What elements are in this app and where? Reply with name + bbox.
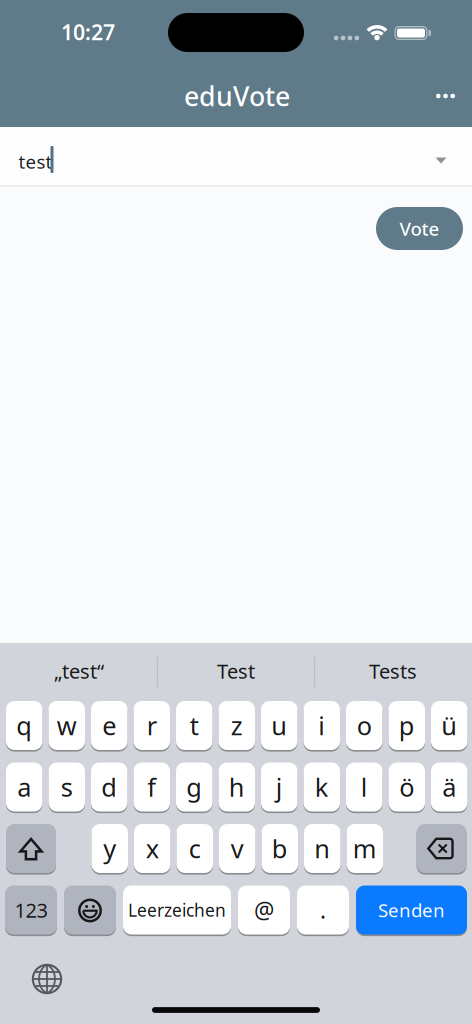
- button[interactable]: i: [303, 701, 340, 750]
- button[interactable]: m: [346, 824, 383, 873]
- staticText: l: [361, 770, 368, 804]
- staticText: Leerzeichen: [128, 898, 226, 921]
- staticText: j: [276, 770, 283, 804]
- button[interactable]: test: [0, 127, 472, 185]
- staticText: k: [315, 770, 329, 804]
- staticText: i: [318, 709, 325, 742]
- button[interactable]: Vote: [376, 207, 463, 250]
- staticText: w: [57, 709, 77, 742]
- button[interactable]: .: [297, 885, 349, 934]
- button[interactable]: Emoji: [64, 885, 116, 934]
- button[interactable]: c: [176, 824, 213, 873]
- button[interactable]: 123: [5, 885, 57, 934]
- button[interactable]: g: [176, 762, 212, 811]
- button[interactable]: d: [91, 762, 127, 811]
- staticText: o: [357, 709, 372, 742]
- staticText: h: [229, 770, 245, 804]
- button[interactable]: e: [91, 701, 127, 750]
- button[interactable]: @: [238, 885, 290, 934]
- staticText: e: [102, 709, 116, 742]
- button[interactable]: y: [91, 824, 128, 873]
- button[interactable]: z: [218, 701, 255, 750]
- staticText: b: [272, 832, 288, 865]
- button[interactable]: q: [6, 701, 42, 750]
- button[interactable]: v: [219, 824, 255, 873]
- button[interactable]: Senden: [356, 885, 467, 934]
- button[interactable]: Delete: [416, 824, 466, 873]
- staticText: t: [190, 709, 199, 742]
- staticText: Test: [217, 658, 255, 684]
- staticText: q: [16, 709, 32, 742]
- button[interactable]: p: [388, 701, 425, 750]
- button[interactable]: Shift: [6, 824, 56, 873]
- button[interactable]: r: [133, 701, 170, 750]
- staticText: test: [18, 149, 52, 174]
- staticText: ä: [442, 770, 456, 804]
- button[interactable]: Test: [217, 649, 255, 693]
- staticText: c: [189, 832, 201, 865]
- button[interactable]: „test“: [54, 649, 104, 693]
- staticText: ü: [441, 709, 457, 742]
- staticText: g: [186, 770, 202, 804]
- button[interactable]: h: [218, 762, 255, 811]
- staticText: y: [103, 832, 116, 865]
- staticText: m: [353, 832, 377, 865]
- button[interactable]: l: [346, 762, 382, 811]
- button[interactable]: s: [48, 762, 85, 811]
- staticText: Vote: [399, 216, 439, 241]
- button[interactable]: n: [304, 824, 340, 873]
- staticText: p: [399, 709, 415, 742]
- staticText: Tests: [369, 658, 417, 684]
- staticText: Senden: [378, 898, 445, 922]
- button[interactable]: x: [134, 824, 170, 873]
- button[interactable]: k: [303, 762, 340, 811]
- button[interactable]: Next keyboard: [25, 957, 69, 1001]
- button[interactable]: ü: [431, 701, 467, 750]
- staticText: .: [320, 895, 326, 925]
- button[interactable]: b: [261, 824, 298, 873]
- staticText: @: [254, 895, 274, 925]
- button[interactable]: Leerzeichen: [123, 885, 231, 934]
- staticText: z: [231, 709, 243, 742]
- staticText: u: [271, 709, 287, 742]
- button[interactable]: More options: [423, 74, 467, 118]
- staticText: eduVote: [184, 78, 290, 114]
- button[interactable]: ö: [388, 762, 425, 811]
- button[interactable]: a: [6, 762, 42, 811]
- staticText: „test“: [54, 658, 104, 684]
- button[interactable]: Tests: [369, 649, 417, 693]
- staticText: r: [147, 709, 157, 742]
- staticText: x: [146, 832, 159, 865]
- staticText: n: [314, 832, 330, 865]
- button[interactable]: f: [133, 762, 170, 811]
- staticText: a: [17, 770, 31, 804]
- staticText: 10:27: [61, 18, 115, 46]
- staticText: 123: [14, 897, 47, 923]
- staticText: d: [101, 770, 117, 804]
- button[interactable]: t: [176, 701, 212, 750]
- button[interactable]: ä: [431, 762, 467, 811]
- staticText: s: [61, 770, 73, 804]
- button[interactable]: o: [346, 701, 382, 750]
- button[interactable]: j: [261, 762, 297, 811]
- staticText: ö: [399, 770, 414, 804]
- button[interactable]: w: [48, 701, 85, 750]
- button[interactable]: u: [261, 701, 297, 750]
- staticText: v: [231, 832, 244, 865]
- staticText: f: [147, 770, 156, 804]
